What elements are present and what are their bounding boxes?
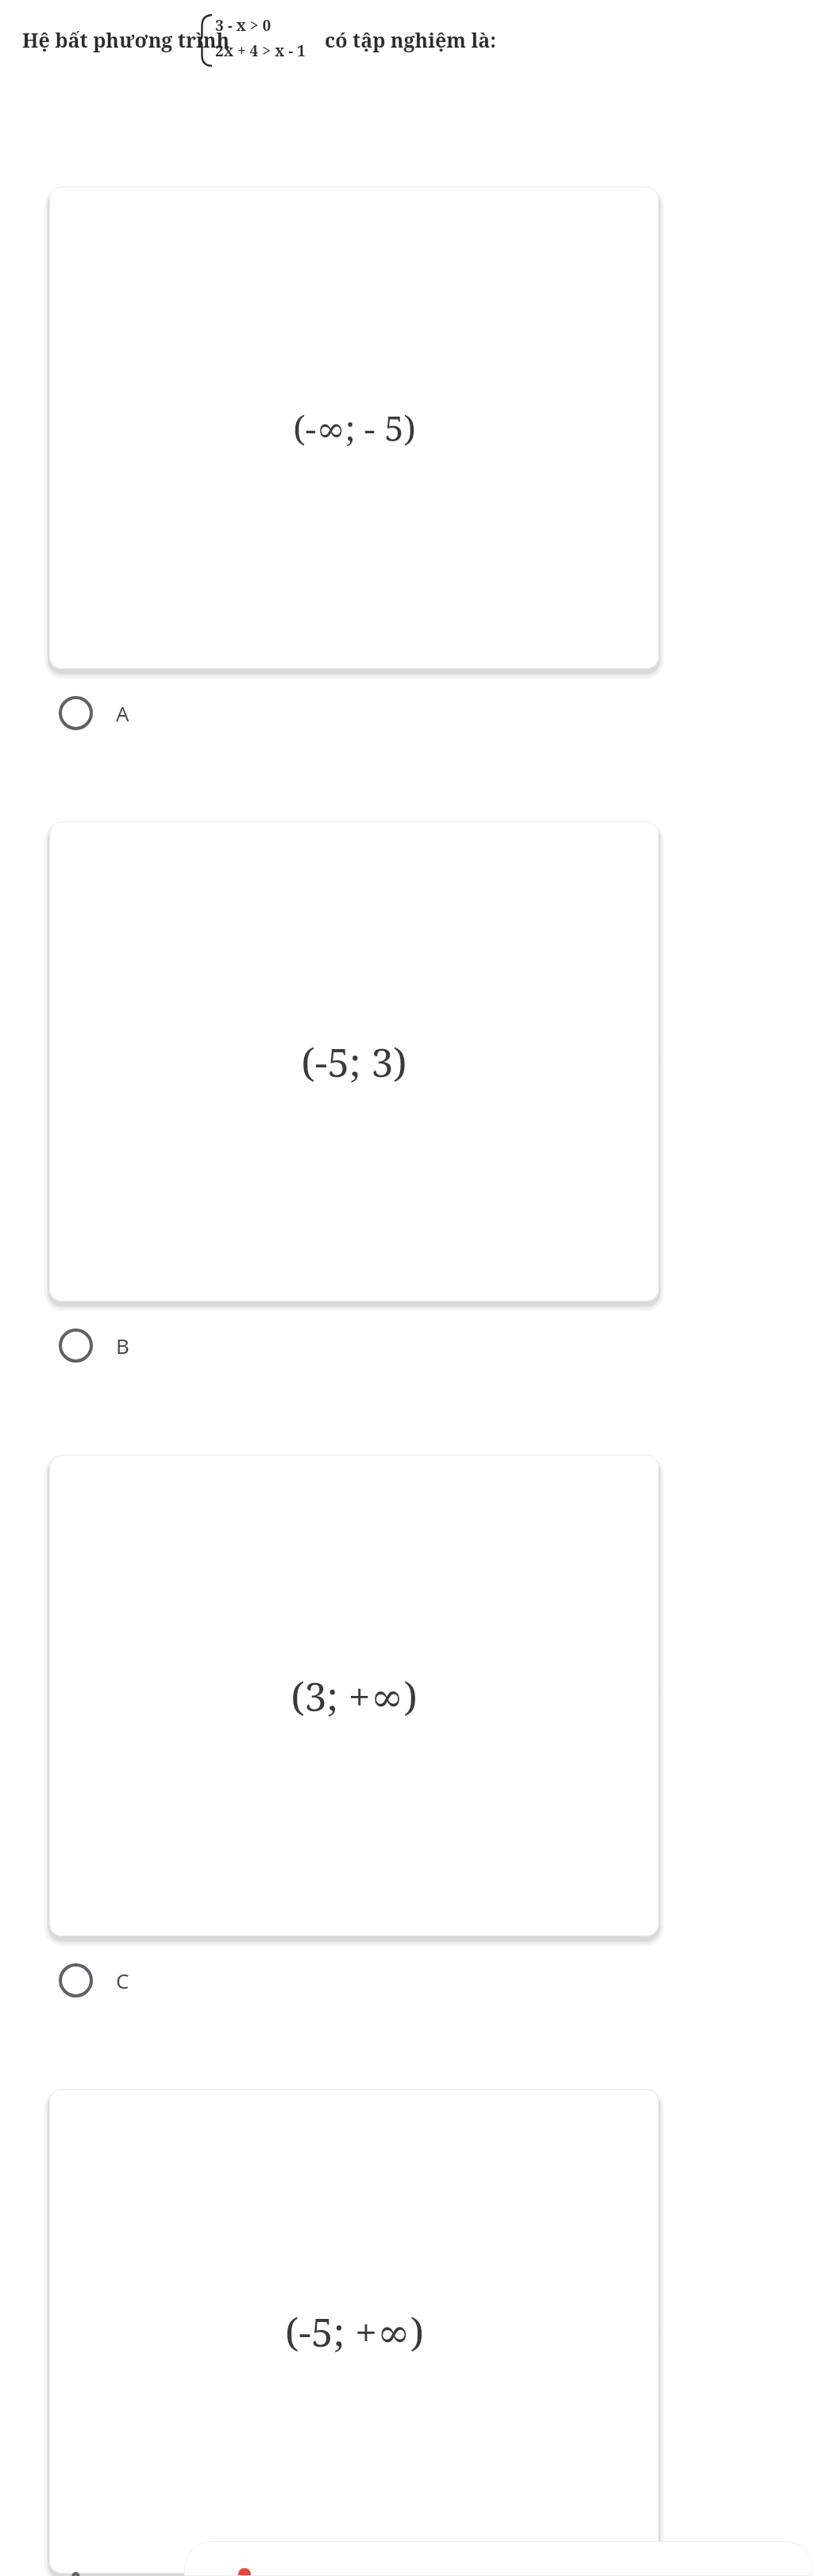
- button[interactable]: (3; +∞): [49, 1455, 659, 1936]
- staticText: A: [116, 699, 129, 727]
- button[interactable]: (-∞; - 5): [49, 186, 659, 669]
- button[interactable]: (-5; 3): [49, 821, 659, 1301]
- button[interactable]: (-5; +∞): [49, 2089, 659, 2574]
- staticText: có tập nghiệm là:: [325, 26, 496, 53]
- staticText: (3; +∞): [291, 1669, 418, 1723]
- other: Select answer C: [58, 1963, 94, 1998]
- staticText: 3 - x > 0: [215, 15, 272, 36]
- button[interactable]: Select answer A: [0, 685, 813, 740]
- staticText: C: [116, 1967, 129, 1994]
- staticText: Hệ bất phương trình: [22, 26, 230, 53]
- staticText: (-5; +∞): [285, 2305, 424, 2359]
- button[interactable]: Select answer C: [0, 1952, 813, 2008]
- staticText: (-∞; - 5): [293, 404, 416, 452]
- staticText: (-5; 3): [301, 1035, 407, 1089]
- staticText: 2x + 4 > x - 1: [215, 40, 306, 61]
- button[interactable]: Select answer B: [0, 1317, 813, 1373]
- other: Select answer A: [58, 695, 94, 731]
- staticText: B: [116, 1332, 129, 1359]
- other: Select answer B: [58, 1328, 94, 1363]
- button[interactable]: Bottom sheet: [184, 2541, 813, 2576]
